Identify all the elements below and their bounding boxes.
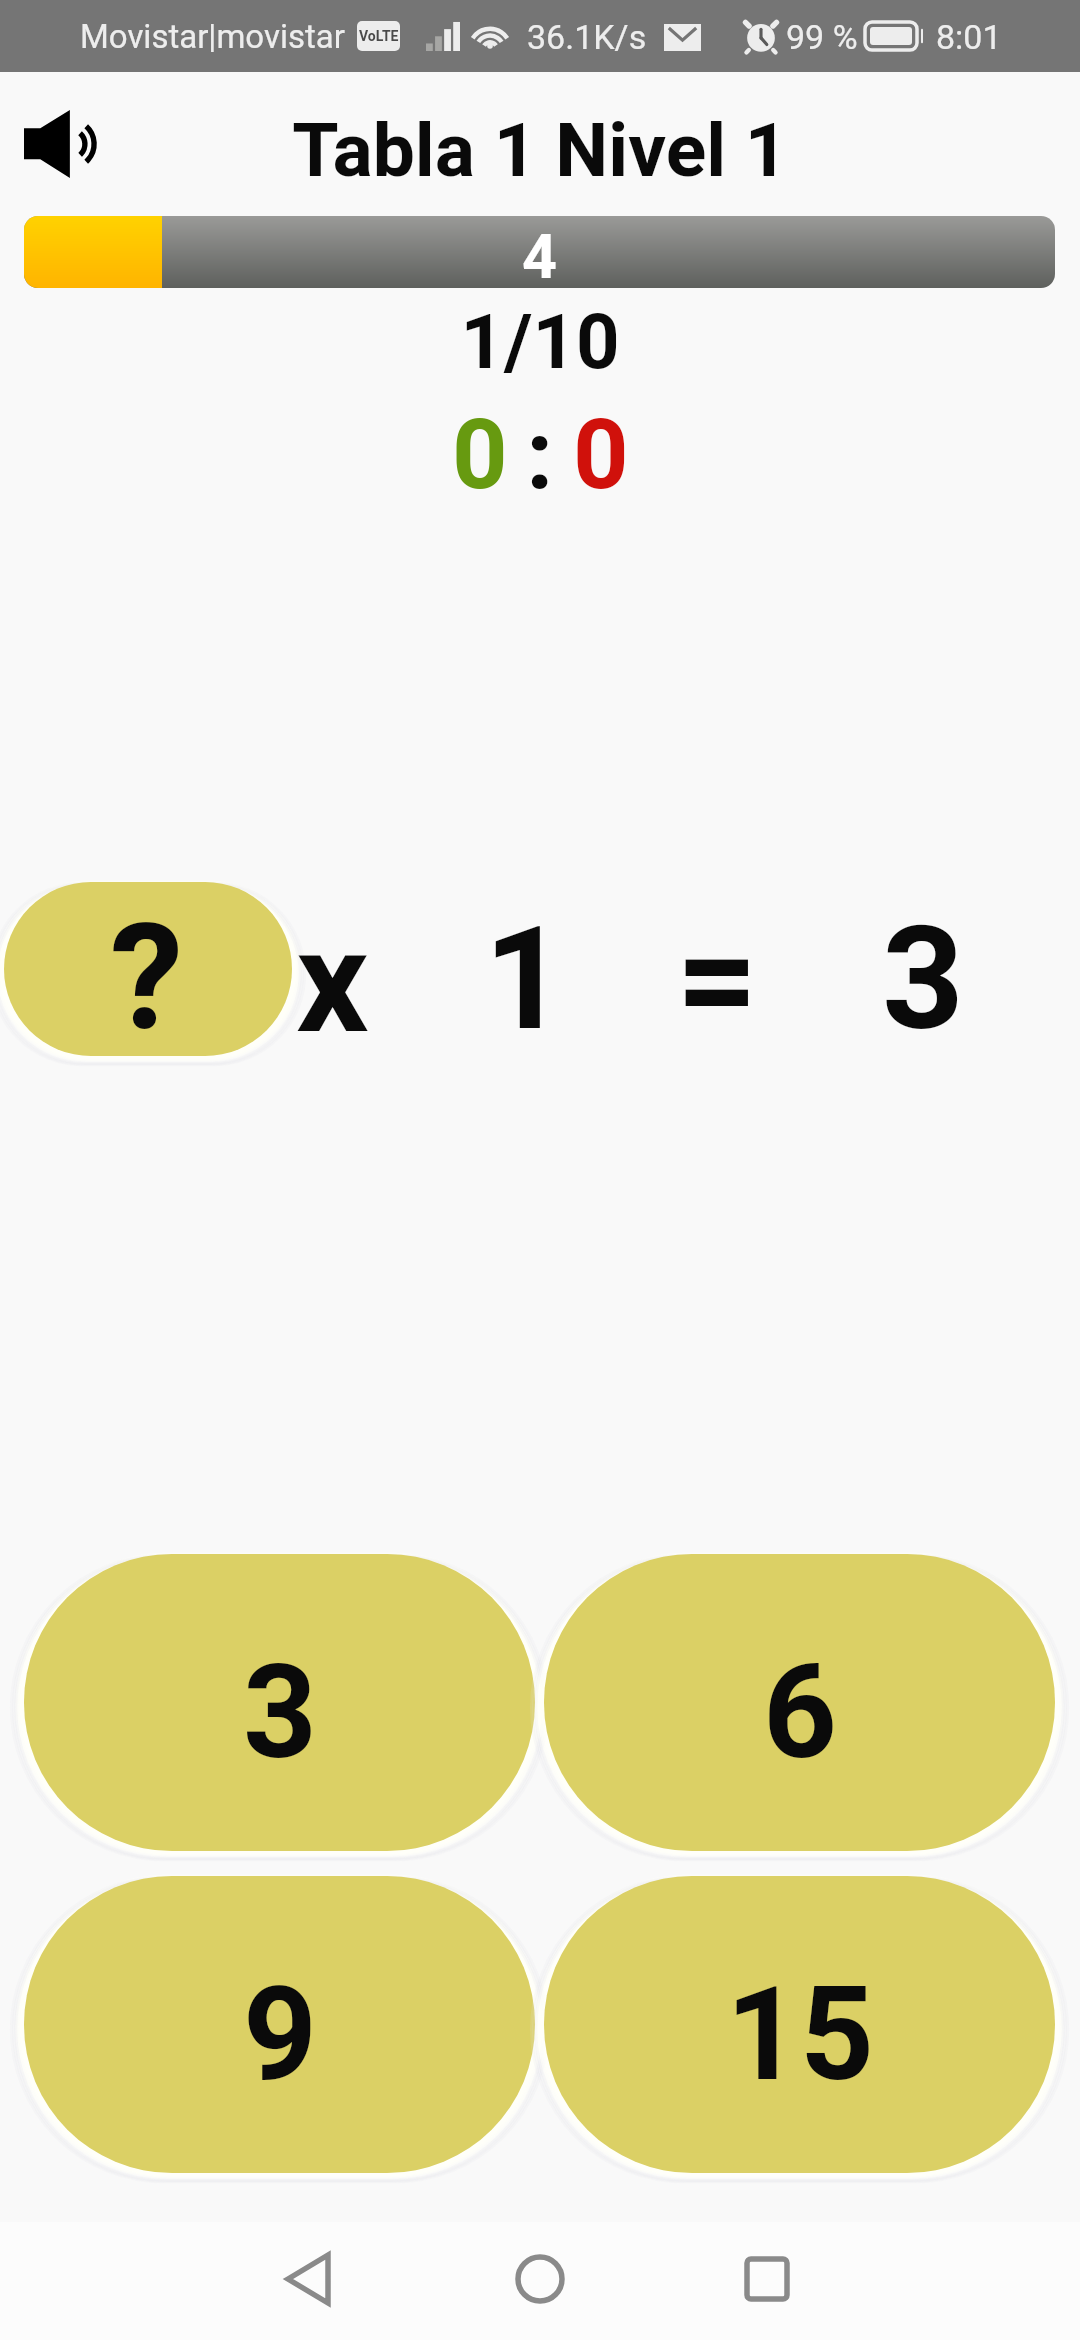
staticText: ? — [110, 892, 184, 1064]
staticText: Movistar|movistar — [80, 17, 345, 56]
staticText: 6 — [763, 1637, 838, 1788]
button[interactable]: 3 — [24, 1554, 535, 1851]
staticText: 3 — [882, 895, 965, 1063]
staticText: 1 — [484, 895, 567, 1063]
staticText: 15 — [726, 1959, 875, 2110]
staticText: 1/10 — [0, 297, 1080, 386]
staticText: : — [526, 398, 554, 512]
staticText: 0 — [452, 398, 508, 512]
staticText: 0 — [573, 398, 629, 512]
button[interactable]: ? — [4, 882, 292, 1056]
staticText: 99 % — [786, 17, 858, 57]
button[interactable]: Home — [490, 2229, 590, 2329]
staticText: 8:01 — [936, 17, 1002, 57]
button[interactable]: Back — [258, 2229, 358, 2329]
staticText: 3 — [243, 1637, 318, 1788]
staticText: Tabla 1 Nivel 1 — [0, 106, 1080, 194]
staticText: = — [676, 895, 758, 1063]
button[interactable]: 6 — [544, 1554, 1055, 1851]
staticText: 4 — [522, 221, 557, 292]
button[interactable]: Recents — [717, 2229, 817, 2329]
button[interactable]: 9 — [24, 1876, 535, 2173]
button[interactable]: Sound — [8, 103, 112, 185]
button[interactable]: 15 — [544, 1876, 1055, 2173]
staticText: 36.1K/s — [527, 17, 647, 57]
staticText: 9 — [243, 1959, 318, 2110]
staticText: VoLTE — [359, 28, 399, 44]
staticText: x — [296, 898, 369, 1066]
